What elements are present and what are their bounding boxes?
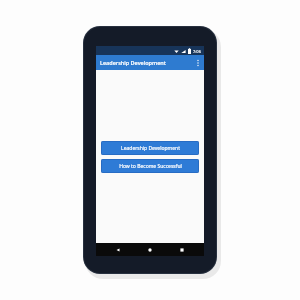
button[interactable]: Leadership Development <box>101 141 199 155</box>
staticText: How to Become Successful <box>119 163 182 170</box>
staticText: Leadership Development <box>100 59 166 66</box>
button[interactable]: Home <box>140 243 160 256</box>
button[interactable]: More options <box>192 55 204 70</box>
button[interactable]: Back <box>108 243 128 256</box>
staticText: 7:06 <box>193 49 201 54</box>
button[interactable]: How to Become Successful <box>101 159 199 173</box>
staticText: Leadership Development <box>121 145 180 152</box>
button[interactable]: Recent apps <box>172 243 192 256</box>
